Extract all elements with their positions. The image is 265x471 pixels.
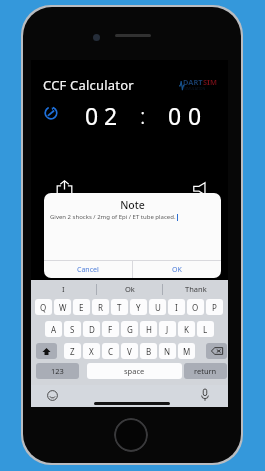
staticText: I: [175, 302, 178, 313]
button[interactable]: F: [102, 321, 119, 337]
staticText: F: [108, 324, 113, 335]
staticText: Thank: [185, 284, 207, 294]
button[interactable]: I: [31, 280, 96, 298]
button[interactable]: S: [64, 321, 81, 337]
button[interactable]: P: [206, 299, 223, 315]
button[interactable]: H: [140, 321, 157, 337]
button[interactable]: 123: [36, 363, 79, 379]
staticText: Given 2 shocks / 2mg of Epi / ET tube pl…: [50, 213, 176, 221]
staticText: SIMULATION: [184, 86, 206, 91]
staticText: A: [51, 324, 57, 335]
button[interactable]: Emoji: [47, 390, 58, 401]
button[interactable]: Shift: [36, 343, 57, 359]
staticText: I: [62, 284, 65, 294]
staticText: space: [124, 366, 145, 376]
button[interactable]: G: [121, 321, 138, 337]
staticText: 0: [168, 100, 182, 131]
staticText: P: [212, 302, 217, 313]
button[interactable]: Z: [64, 343, 81, 359]
button[interactable]: Share: [56, 180, 73, 196]
staticText: X: [89, 346, 94, 357]
staticText: Note: [44, 198, 221, 212]
button[interactable]: N: [159, 343, 176, 359]
staticText: 0: [188, 100, 202, 131]
staticText: Z: [70, 346, 75, 357]
button[interactable]: D: [83, 321, 100, 337]
staticText: SIM: [203, 77, 217, 87]
button[interactable]: M: [178, 343, 195, 359]
staticText: 123: [51, 366, 64, 376]
button[interactable]: OK: [133, 261, 221, 278]
staticText: Y: [136, 302, 141, 313]
button[interactable]: V: [121, 343, 138, 359]
button[interactable]: U: [149, 299, 166, 315]
button[interactable]: return: [184, 363, 227, 379]
other: Timer: [44, 106, 58, 120]
staticText: 0: [85, 100, 99, 131]
staticText: DART: [183, 77, 203, 87]
button[interactable]: W: [54, 299, 71, 315]
button[interactable]: K: [178, 321, 195, 337]
staticText: return: [194, 366, 217, 376]
button[interactable]: I: [168, 299, 185, 315]
staticText: OK: [172, 265, 182, 275]
staticText: K: [184, 324, 189, 335]
staticText: H: [146, 324, 152, 335]
staticText: C: [108, 346, 114, 357]
button[interactable]: E: [73, 299, 90, 315]
button[interactable]: Speaker: [193, 182, 206, 195]
staticText: U: [155, 302, 161, 313]
staticText: T: [117, 302, 122, 313]
button[interactable]: L: [197, 321, 214, 337]
staticText: D: [89, 324, 95, 335]
staticText: E: [79, 302, 84, 313]
staticText: R: [98, 302, 103, 313]
staticText: V: [127, 346, 132, 357]
staticText: CCF Calculator: [43, 76, 134, 94]
button[interactable]: R: [92, 299, 109, 315]
button[interactable]: Y: [130, 299, 147, 315]
staticText: N: [164, 346, 171, 357]
button[interactable]: Thank: [163, 280, 228, 298]
staticText: M: [183, 346, 191, 357]
staticText: J: [166, 324, 169, 335]
staticText: G: [127, 324, 133, 335]
button[interactable]: T: [111, 299, 128, 315]
button[interactable]: X: [83, 343, 100, 359]
button[interactable]: space: [87, 363, 182, 379]
button[interactable]: A: [45, 321, 62, 337]
button[interactable]: B: [140, 343, 157, 359]
staticText: :: [140, 100, 146, 130]
staticText: Cancel: [77, 265, 99, 275]
staticText: Q: [40, 302, 47, 313]
staticText: 2: [104, 100, 118, 131]
button[interactable]: O: [187, 299, 204, 315]
button[interactable]: Q: [35, 299, 52, 315]
staticText: B: [146, 346, 152, 357]
staticText: W: [59, 302, 67, 313]
button[interactable]: Ok: [97, 280, 162, 298]
staticText: O: [192, 302, 199, 313]
staticText: S: [70, 324, 75, 335]
button[interactable]: J: [159, 321, 176, 337]
button[interactable]: C: [102, 343, 119, 359]
staticText: Ok: [125, 284, 135, 294]
button[interactable]: Dictate: [201, 389, 209, 401]
staticText: L: [203, 324, 208, 335]
button[interactable]: Cancel: [44, 261, 132, 278]
button[interactable]: Backspace: [206, 343, 227, 359]
